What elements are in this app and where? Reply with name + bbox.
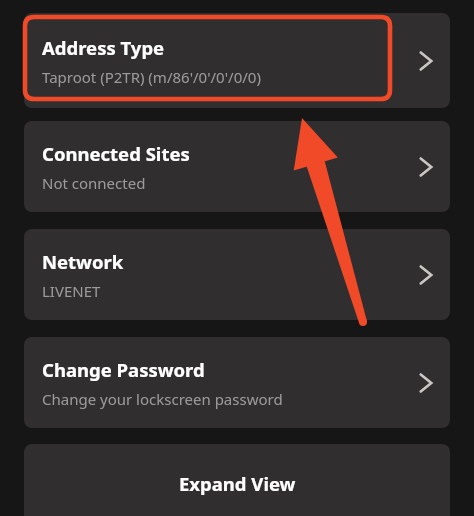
staticText: Change Password	[42, 357, 205, 382]
button[interactable]: Expand View	[24, 444, 450, 516]
other: Network	[410, 258, 444, 292]
staticText: Network	[42, 249, 124, 274]
button[interactable]: Change Password	[24, 337, 450, 428]
staticText: Address Type	[42, 35, 165, 60]
staticText: Change your lockscreen password	[42, 389, 283, 409]
button[interactable]: Network	[24, 229, 450, 320]
other: Change Password	[410, 366, 444, 400]
staticText: Expand View	[179, 471, 296, 496]
staticText: LIVENET	[42, 281, 101, 301]
button[interactable]: Connected Sites	[24, 121, 450, 212]
staticText: Taproot (P2TR) (m/86'/0'/0'/0/0)	[42, 67, 261, 87]
staticText: Connected Sites	[42, 141, 190, 166]
button[interactable]: Address Type	[24, 13, 450, 108]
other: Address Type	[410, 44, 444, 78]
other: Connected Sites	[410, 150, 444, 184]
staticText: Not connected	[42, 173, 146, 193]
